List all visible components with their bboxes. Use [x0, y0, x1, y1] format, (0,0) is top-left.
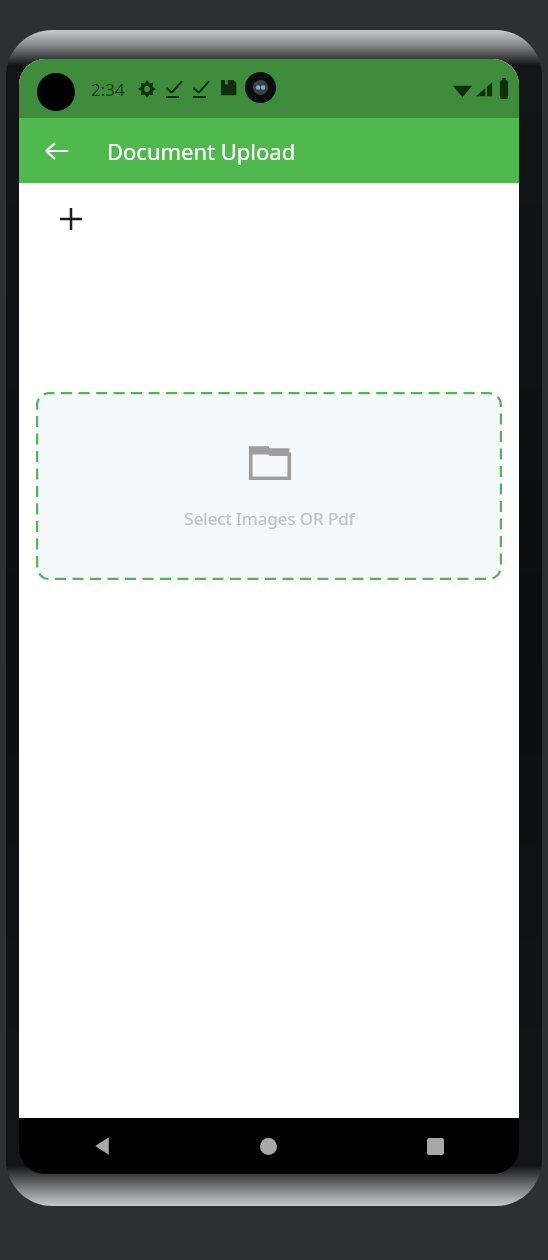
button[interactable]: Back — [31, 125, 83, 177]
staticText: Select Images OR Pdf — [184, 507, 355, 530]
staticText: 2:34 — [91, 78, 125, 101]
button[interactable]: Back — [19, 1118, 185, 1174]
button[interactable]: Select Images OR Pdf — [36, 392, 502, 580]
button[interactable]: Home — [185, 1118, 352, 1174]
button[interactable]: Recent apps — [352, 1118, 519, 1174]
staticText: Document Upload — [107, 136, 296, 166]
button[interactable]: Add document — [46, 194, 96, 244]
